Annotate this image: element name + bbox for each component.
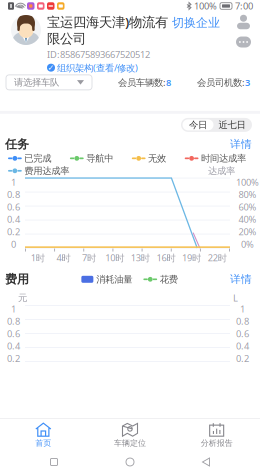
- staticText: 0.2: [236, 352, 249, 365]
- button[interactable]: 个人中心: [236, 15, 250, 29]
- button[interactable]: 近七日: [213, 119, 250, 130]
- staticText: 80%: [238, 188, 256, 201]
- staticText: 100%: [236, 176, 259, 188]
- staticText: 任务: [5, 137, 29, 152]
- button[interactable]: 详情: [230, 273, 260, 286]
- staticText: 20%: [238, 225, 256, 238]
- staticText: 1: [11, 176, 16, 188]
- staticText: 13时: [131, 251, 150, 264]
- button[interactable]: 返回: [184, 452, 228, 471]
- staticText: 0.6: [7, 201, 20, 213]
- staticText: 请选择车队: [14, 77, 59, 88]
- staticText: 限公司: [47, 31, 86, 47]
- staticText: 元: [18, 292, 27, 304]
- staticText: 1: [11, 303, 16, 315]
- staticText: 1: [240, 303, 245, 315]
- staticText: 60%: [238, 201, 256, 213]
- staticText: 近七日: [218, 119, 245, 131]
- button[interactable]: 请选择车队: [6, 75, 92, 90]
- staticText: 详情: [230, 138, 252, 151]
- staticText: 导航中: [86, 153, 113, 164]
- staticText: 费用: [5, 272, 29, 287]
- button[interactable]: 车辆定位: [87, 423, 173, 448]
- button[interactable]: ✓: [47, 61, 138, 74]
- staticText: 3: [245, 76, 250, 89]
- staticText: 0.2: [7, 225, 20, 238]
- staticText: 10时: [105, 251, 124, 264]
- staticText: ID:858675893667520512: [47, 48, 150, 60]
- staticText: 首页: [35, 438, 51, 448]
- staticText: 0.6: [7, 327, 20, 340]
- button[interactable]: 详情: [230, 138, 260, 151]
- button[interactable]: 切换企业: [172, 15, 220, 30]
- staticText: 0.6: [236, 327, 249, 340]
- button[interactable]: 首页: [0, 423, 87, 448]
- staticText: 时间达成率: [201, 153, 246, 164]
- staticText: 19时: [182, 251, 201, 264]
- staticText: 组织架构(查看/修改): [57, 61, 138, 74]
- staticText: 40%: [238, 213, 256, 225]
- staticText: 车辆定位: [114, 438, 146, 448]
- staticText: 16时: [156, 251, 175, 264]
- staticText: 22时: [208, 251, 227, 264]
- staticText: 今日: [189, 119, 207, 131]
- button[interactable]: 最近任务: [32, 452, 76, 471]
- staticText: ✓: [47, 63, 54, 72]
- staticText: 7时: [82, 251, 96, 264]
- staticText: 0.8: [7, 315, 20, 327]
- staticText: 0%: [241, 238, 254, 250]
- staticText: 0.2: [7, 352, 20, 365]
- staticText: 消耗油量: [96, 274, 132, 285]
- staticText: 花费: [160, 274, 178, 285]
- staticText: 0.8: [7, 188, 20, 201]
- staticText: 7:00: [235, 0, 253, 12]
- staticText: 0.4: [236, 340, 249, 352]
- staticText: 1时: [31, 251, 45, 264]
- staticText: 0.4: [7, 340, 20, 352]
- staticText: 100%: [194, 0, 217, 12]
- staticText: 4时: [56, 251, 70, 264]
- staticText: 8: [166, 76, 171, 89]
- staticText: L: [233, 292, 238, 304]
- staticText: 会员车辆数:: [118, 76, 166, 89]
- staticText: 0: [11, 238, 16, 250]
- staticText: 费用达成率: [24, 165, 69, 177]
- staticText: 宝运四海天津)物流有: [47, 13, 168, 31]
- staticText: 已完成: [24, 153, 51, 164]
- staticText: 会员司机数:: [197, 76, 245, 89]
- button[interactable]: 消息: [236, 36, 251, 48]
- staticText: 0.8: [236, 315, 249, 327]
- staticText: 详情: [230, 273, 252, 286]
- button[interactable]: 主页: [108, 452, 152, 471]
- button[interactable]: 今日: [182, 119, 213, 130]
- staticText: 分析报告: [201, 438, 233, 448]
- staticText: 切换企业: [172, 15, 220, 30]
- staticText: 无效: [148, 153, 166, 164]
- staticText: 0.4: [7, 213, 20, 225]
- staticText: 达成率: [208, 165, 235, 177]
- button[interactable]: 分析报告: [173, 423, 260, 448]
